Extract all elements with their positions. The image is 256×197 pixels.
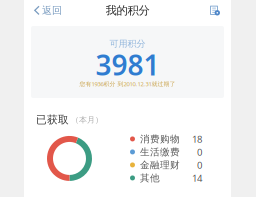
staticText: 您有1936积分 到2010.12.31就过期了: [79, 80, 175, 88]
staticText: （本月）: [71, 115, 103, 125]
staticText: 0: [197, 145, 202, 158]
staticText: 生活缴费: [140, 146, 180, 158]
button[interactable]: 返回: [24, 0, 66, 21]
staticText: 返回: [42, 4, 62, 17]
staticText: 消费购物: [140, 133, 180, 145]
button[interactable]: 积分明细: [210, 1, 231, 19]
staticText: 可用积分: [109, 38, 145, 49]
staticText: 已获取: [36, 113, 69, 126]
staticText: 其他: [140, 172, 160, 184]
staticText: 金融理财: [140, 159, 180, 171]
staticText: 0: [197, 158, 202, 171]
staticText: 18: [192, 132, 202, 145]
staticText: 3981: [95, 49, 159, 80]
staticText: 我的积分: [105, 3, 149, 18]
staticText: 14: [192, 171, 202, 184]
